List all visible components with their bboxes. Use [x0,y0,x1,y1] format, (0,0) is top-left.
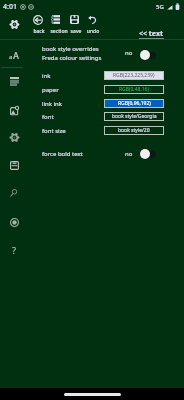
staticText: save [64,28,88,35]
staticText: << text [139,29,163,39]
button[interactable]: Help [4,240,24,260]
staticText: book style/20 [118,127,150,134]
staticText: book style overrides [42,45,99,53]
button[interactable]: link ink [28,97,184,110]
staticText: A [13,49,19,61]
staticText: ? [12,244,17,256]
staticText: force bold text [42,150,83,158]
button[interactable]: Bookmarks [4,155,24,175]
button[interactable]: paper [28,83,184,96]
staticText: link ink [42,100,63,108]
staticText: book style/Georgia [112,113,157,120]
button[interactable] [46,11,65,32]
button[interactable]: font [28,110,184,123]
button[interactable] [65,11,84,32]
staticText: ink [42,72,51,80]
button[interactable]: force bold text [28,146,184,161]
staticText: undo [81,28,105,35]
button[interactable]: book style overrides [28,43,184,63]
staticText: back [27,28,51,35]
staticText: no [125,49,133,57]
button[interactable]: Text formatting [4,71,24,91]
staticText: Freda colour settings [42,54,102,62]
button[interactable]: Images [4,100,24,120]
button[interactable]: ink [28,69,184,82]
staticText: RGB(223,225,239) [113,72,155,79]
staticText: 4:01 [3,2,17,12]
staticText: RGB(0,48,16) [119,86,149,93]
button[interactable] [28,11,47,32]
staticText: font [42,113,54,121]
staticText: font size [42,127,66,135]
staticText: a [9,53,13,61]
button[interactable]: Record [4,212,24,232]
staticText: paper [42,86,59,94]
button[interactable]: Settings [4,127,24,147]
button[interactable]: Text size [4,45,24,65]
staticText: no [125,150,133,158]
button[interactable]: Search [4,183,24,203]
staticText: section [47,28,71,35]
button[interactable]: << text [137,29,165,39]
button[interactable]: Settings [5,15,23,33]
button[interactable] [83,11,102,32]
staticText: RGB(0,96,192) [118,100,151,107]
staticText: 5G [156,3,164,11]
button[interactable]: font size [28,124,184,137]
